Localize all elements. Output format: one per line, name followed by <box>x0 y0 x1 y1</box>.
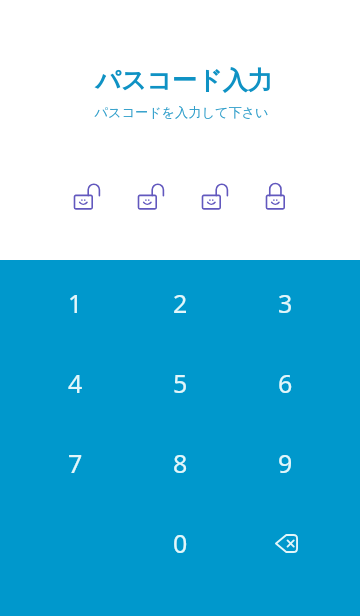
staticText: 1 <box>68 286 83 320</box>
staticText: 3 <box>278 286 293 320</box>
other: Delete <box>275 534 298 553</box>
staticText: 5 <box>173 366 188 400</box>
button[interactable]: 1 <box>23 263 128 343</box>
button[interactable]: 9 <box>233 423 338 503</box>
button[interactable]: 5 <box>128 343 233 423</box>
staticText: 6 <box>278 366 293 400</box>
button[interactable]: 0 <box>128 503 233 583</box>
staticText: パスコード入力 <box>95 65 273 96</box>
staticText: パスコードを入力して下さい <box>94 104 269 121</box>
button[interactable]: 8 <box>128 423 233 503</box>
staticText: 8 <box>173 446 188 480</box>
button[interactable]: 3 <box>233 263 338 343</box>
button[interactable]: 4 <box>23 343 128 423</box>
button[interactable]: 2 <box>128 263 233 343</box>
staticText: 0 <box>173 526 188 560</box>
staticText: 4 <box>68 366 83 400</box>
staticText: 7 <box>68 446 83 480</box>
button[interactable]: 7 <box>23 423 128 503</box>
button[interactable]: Delete <box>233 503 338 583</box>
button[interactable]: 6 <box>233 343 338 423</box>
staticText: 2 <box>173 286 188 320</box>
staticText: 9 <box>278 446 293 480</box>
